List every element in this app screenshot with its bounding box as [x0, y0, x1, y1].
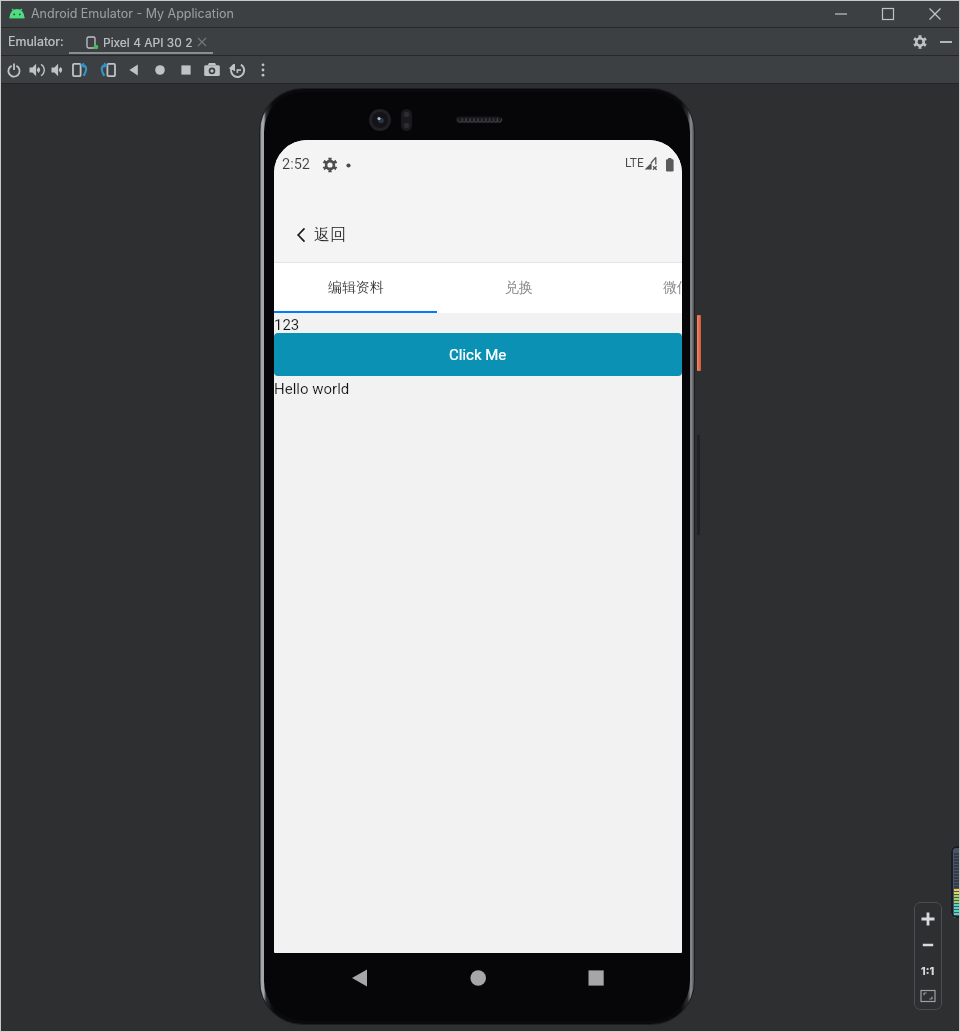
staticText: 123 — [274, 316, 300, 334]
button[interactable]: Click Me — [274, 333, 682, 376]
button[interactable]: Fit to screen — [914, 982, 942, 1010]
button[interactable]: Close window — [921, 0, 949, 28]
button[interactable]: Overview — [176, 56, 196, 84]
staticText: 编辑资料 — [328, 279, 384, 297]
button[interactable]: More — [253, 56, 273, 84]
staticText: Emulator: — [8, 34, 64, 49]
staticText: Android Emulator - My Application — [31, 6, 234, 21]
button[interactable]: 编辑资料 — [274, 263, 437, 313]
staticText: 1:1 — [921, 964, 935, 977]
button[interactable]: Zoom out — [914, 931, 942, 959]
staticText: 返回 — [314, 225, 346, 245]
button[interactable]: Screenshot — [202, 56, 222, 84]
button[interactable]: 返回 — [274, 209, 682, 261]
button[interactable]: Power — [4, 56, 24, 84]
button[interactable]: Rotate right — [97, 56, 117, 84]
button[interactable]: 兑换 — [437, 263, 600, 313]
button[interactable]: Home — [150, 56, 170, 84]
staticText: LTE — [625, 156, 644, 170]
button[interactable]: Back — [124, 56, 144, 84]
button[interactable]: Volume up — [26, 56, 46, 84]
button[interactable]: Collapse panel — [934, 28, 958, 56]
button[interactable]: 微信 — [595, 263, 682, 313]
button[interactable]: Volume down — [48, 56, 68, 84]
button[interactable]: Minimize window — [827, 0, 855, 28]
staticText: Click Me — [449, 346, 507, 364]
button[interactable]: Maximize window — [874, 0, 902, 28]
staticText: 兑换 — [505, 279, 533, 297]
staticText: Pixel 4 API 30 2 — [103, 35, 193, 50]
button[interactable]: Rotate left — [71, 56, 91, 84]
staticText: Hello world — [274, 380, 350, 398]
staticText: 2:52 — [282, 156, 310, 173]
button[interactable]: Pixel 4 API 30 2 — [69, 28, 208, 56]
button[interactable]: Zoom in — [914, 905, 942, 933]
button[interactable]: History — [227, 56, 247, 84]
staticText: 微信 — [663, 279, 682, 297]
button[interactable]: Emulator settings — [908, 28, 932, 56]
button[interactable]: Actual size — [914, 956, 942, 984]
